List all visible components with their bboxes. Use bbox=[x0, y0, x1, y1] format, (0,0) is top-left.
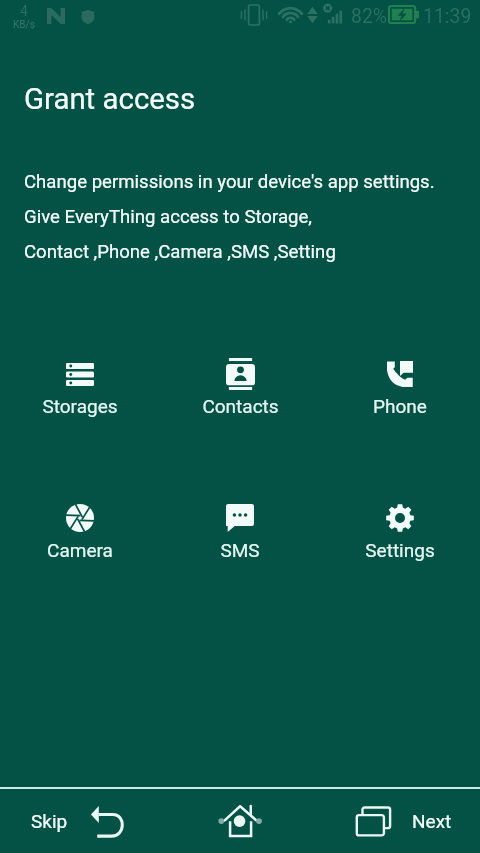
staticText: Contacts bbox=[202, 395, 279, 417]
button[interactable]: Camera bbox=[0, 502, 160, 561]
button[interactable]: Skip bbox=[31, 810, 68, 832]
button[interactable]: Contacts bbox=[160, 358, 320, 417]
staticText: Contact ,Phone ,Camera ,SMS ,Setting bbox=[24, 241, 336, 263]
staticText: Grant access bbox=[24, 82, 196, 116]
staticText: Settings bbox=[365, 539, 435, 561]
staticText: Phone bbox=[373, 395, 427, 417]
button[interactable]: Home bbox=[218, 803, 262, 837]
staticText: 82% bbox=[351, 5, 387, 28]
button[interactable]: Back bbox=[90, 805, 126, 841]
button[interactable]: Next bbox=[412, 810, 452, 832]
button[interactable]: Settings bbox=[320, 502, 480, 561]
button[interactable]: SMS bbox=[160, 502, 320, 561]
staticText: Camera bbox=[47, 539, 113, 561]
button[interactable]: Storages bbox=[0, 358, 160, 417]
staticText: 11:39 bbox=[423, 5, 472, 28]
staticText: KB/s bbox=[13, 19, 35, 31]
staticText: SMS bbox=[220, 539, 260, 561]
button[interactable]: Phone bbox=[320, 358, 480, 417]
staticText: 4 bbox=[20, 3, 28, 19]
staticText: Give EveryThing access to Storage, bbox=[24, 206, 312, 228]
button[interactable]: Recent apps bbox=[355, 805, 391, 835]
staticText: Storages bbox=[42, 395, 118, 417]
staticText: Change permissions in your device's app … bbox=[24, 171, 435, 193]
